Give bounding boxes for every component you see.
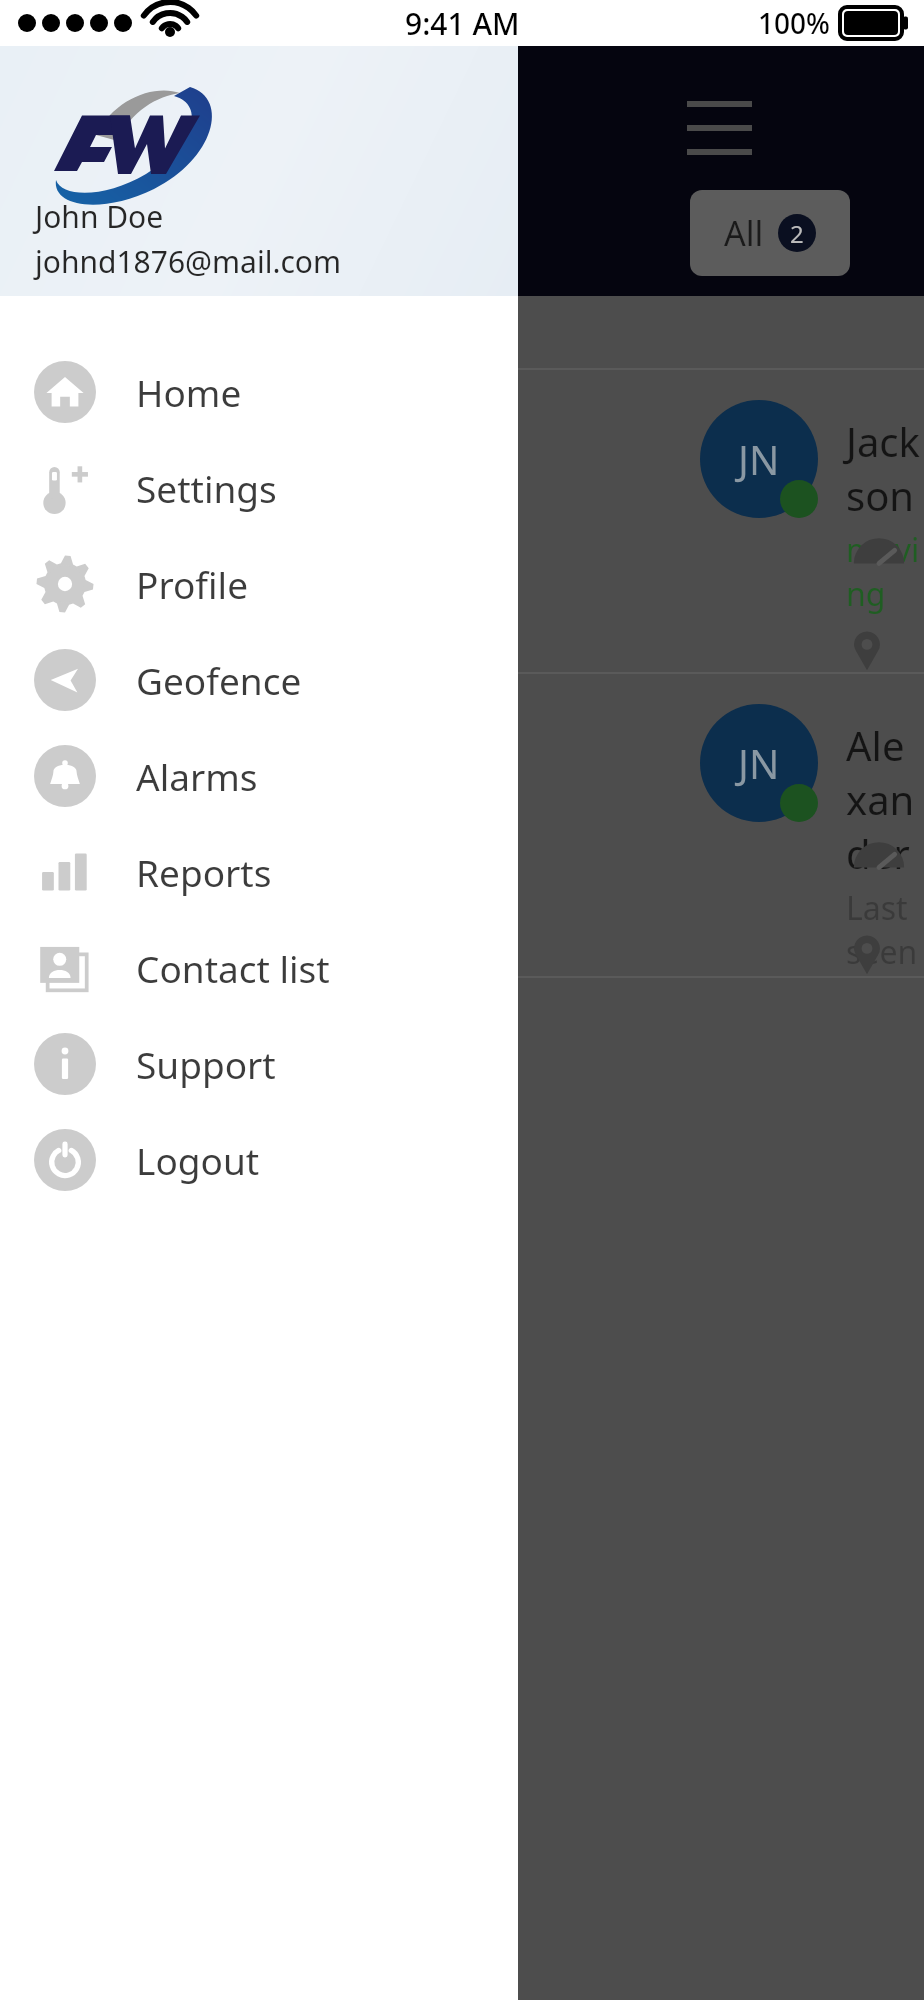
staticText: Contact list [136, 943, 330, 993]
button[interactable]: Speed [844, 824, 914, 894]
button[interactable]: Menu [687, 101, 752, 155]
button[interactable]: JN [0, 370, 924, 672]
staticText: Home [136, 367, 242, 417]
staticText: 2 [790, 217, 804, 250]
staticText: JN [738, 432, 780, 486]
staticText: Profile [136, 559, 248, 609]
staticText: 9:41 AM [405, 3, 520, 44]
button[interactable]: Profile [0, 536, 518, 632]
button[interactable]: Home [0, 344, 518, 440]
staticText: Alarms [136, 751, 258, 801]
button[interactable]: Location [844, 930, 914, 976]
staticText: JN [738, 736, 780, 790]
button[interactable]: Geofence [0, 632, 518, 728]
button[interactable]: Logout [0, 1112, 518, 1208]
button[interactable]: Support [0, 1016, 518, 1112]
button[interactable]: All [690, 190, 850, 276]
staticText: Settings [136, 463, 277, 513]
staticText: Alexander [846, 718, 924, 880]
staticText: Support [136, 1039, 276, 1089]
button[interactable]: Speed [844, 520, 914, 590]
button[interactable]: Contact list [0, 920, 518, 1016]
staticText: Reports [136, 847, 272, 897]
staticText: Logout [136, 1135, 260, 1185]
button[interactable]: JN [0, 674, 924, 976]
staticText: Last seen 2h ago [846, 886, 924, 976]
button[interactable]: Settings [0, 440, 518, 536]
button[interactable]: Reports [0, 824, 518, 920]
staticText: johnd1876@mail.com [35, 241, 342, 282]
staticText: moving [846, 528, 924, 616]
staticText: John Doe [35, 196, 164, 237]
staticText: Jackson [846, 414, 924, 522]
staticText: Geofence [136, 655, 302, 705]
button[interactable]: Location [844, 626, 914, 672]
staticText: 100% [758, 4, 830, 42]
staticText: All [724, 210, 764, 256]
button[interactable]: Alarms [0, 728, 518, 824]
